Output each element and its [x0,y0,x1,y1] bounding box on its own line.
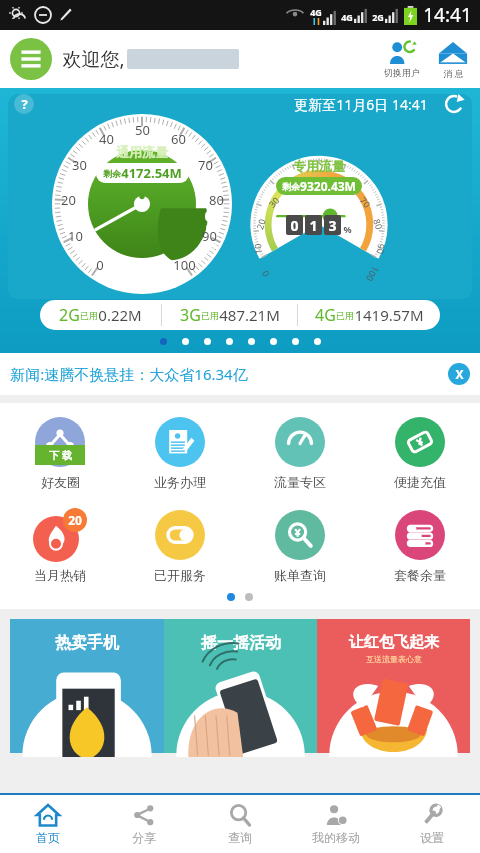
button[interactable]: 摇一摇活动 [164,619,317,753]
staticText: 1419.57M [354,305,424,325]
staticText: % [207,237,217,252]
button[interactable]: Close news [448,363,470,385]
staticText: 0.22M [98,305,142,325]
button[interactable]: 业务办理 [120,413,240,492]
staticText: 10 [68,227,83,245]
staticText: 通用流量 [116,144,168,160]
staticText: 60 [337,178,352,194]
staticText: 50 [314,175,325,187]
staticText: 40 [99,130,114,148]
staticText: 30 [265,194,282,210]
staticText: 套餐余量 [394,567,446,583]
staticText: 100 [364,264,382,284]
staticText: 3G [180,304,201,326]
button[interactable]: Help [14,94,34,114]
button[interactable]: 让红包飞起来 [317,619,470,753]
staticText: 已用 [336,310,354,321]
staticText: 80 [371,217,386,231]
staticText: 我的移动 [312,830,360,845]
staticText: 100 [173,256,196,274]
staticText: 20 [61,191,76,209]
staticText: 分享 [132,830,156,845]
staticText: 新闻:速腾不换悬挂：大众省16.34亿 [10,364,248,384]
staticText: 2G [59,304,80,326]
staticText: 70 [357,194,374,210]
staticText: 更新至11月6日 14:41 [294,95,428,114]
staticText: 欢迎您, [62,46,125,72]
button[interactable]: 切换用户 [382,40,422,78]
button[interactable]: 查询 [192,795,288,853]
staticText: 账单查询 [274,567,326,583]
staticText: 90 [202,227,217,245]
staticText: 专用流量 [293,158,345,174]
staticText: 10 [251,243,264,255]
staticText: % [343,223,352,235]
staticText: 487.21M [219,305,280,325]
staticText: 20 [253,217,268,231]
staticText: 50 [135,121,150,139]
staticText: 1 [309,216,318,235]
staticText: 便捷充值 [394,474,446,490]
staticText: X [455,366,464,382]
staticText: 摇一摇活动 [201,633,281,653]
staticText: 0 [96,256,104,274]
staticText: 消 息 [443,67,464,79]
button[interactable]: Menu [10,38,52,80]
staticText: ? [21,95,28,113]
button[interactable]: 我的移动 [288,795,384,853]
button[interactable]: 20 [0,506,120,585]
button[interactable]: 2G [40,300,440,330]
button[interactable]: 下 载 [0,413,120,492]
staticText: 3 [328,216,337,235]
button[interactable]: 设置 [384,795,480,853]
staticText: 当月热销 [34,567,86,583]
staticText: 好友圈 [41,474,80,490]
button[interactable]: Refresh [442,92,466,116]
staticText: 已开服务 [154,567,206,583]
staticText: 9 [204,200,220,237]
button[interactable]: 分享 [96,795,192,853]
staticText: 90 [375,243,388,255]
staticText: 0 [258,268,272,280]
staticText: 剩余 [282,181,300,192]
staticText: 80 [209,191,224,209]
button[interactable]: 账单查询 [240,506,360,585]
staticText: 0 [290,216,299,235]
staticText: 4G [315,304,336,326]
staticText: 热卖手机 [55,633,119,653]
button[interactable]: 已开服务 [120,506,240,585]
button[interactable]: 流量专区 [240,413,360,492]
staticText: 70 [198,156,213,174]
button[interactable]: 便捷充值 [360,413,480,492]
staticText: 互送流量表心意 [366,654,422,664]
staticText: 首页 [36,830,60,845]
staticText: 切换用户 [384,67,420,78]
staticText: 查询 [228,830,252,845]
staticText: 20 [68,512,82,528]
staticText: 已用 [80,310,98,321]
staticText: 4G [310,6,322,18]
staticText: 4172.54M [121,164,182,182]
staticText: 业务办理 [154,474,206,490]
staticText: 剩余 [103,168,121,179]
staticText: 设置 [420,830,444,845]
staticText: 14:41 [423,2,472,28]
staticText: 40 [287,178,302,194]
staticText: 下 载 [49,448,72,462]
button[interactable]: 套餐余量 [360,506,480,585]
staticText: 2G [372,11,384,23]
staticText: 已用 [201,310,219,321]
staticText: 流量专区 [274,474,326,490]
button[interactable]: 消 息 [436,40,470,79]
button[interactable]: 首页 [0,795,96,853]
staticText: 4G [341,11,353,23]
button[interactable]: 热卖手机 [10,619,164,753]
staticText: 9320.43M [300,178,356,194]
staticText: 60 [171,130,186,148]
staticText: 30 [72,156,87,174]
staticText: 让红包飞起来 [349,633,439,652]
